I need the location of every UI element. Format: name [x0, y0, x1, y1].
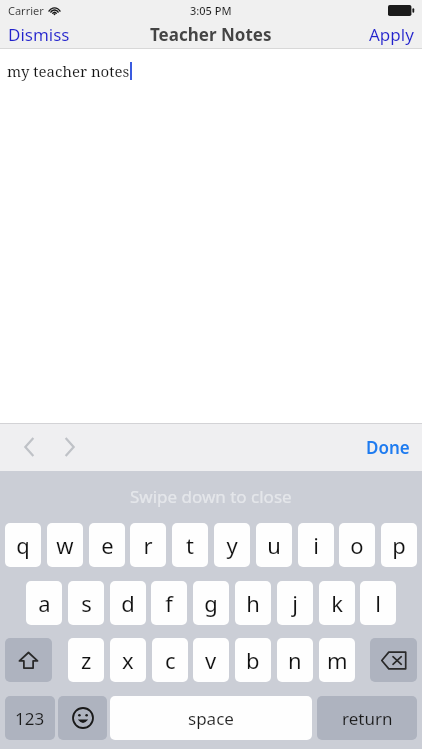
button[interactable]: d [110, 581, 146, 625]
staticText: z [81, 645, 92, 675]
staticText: u [267, 530, 281, 560]
staticText: d [121, 588, 135, 618]
button[interactable]: h [235, 581, 271, 625]
staticText: a [38, 588, 51, 618]
button[interactable]: f [151, 581, 187, 625]
staticText: f [165, 588, 173, 618]
staticText: b [246, 645, 260, 675]
button[interactable]: y [214, 523, 250, 567]
button[interactable]: t [172, 523, 208, 567]
button[interactable]: n [277, 638, 313, 682]
staticText: w [56, 530, 74, 560]
button[interactable]: m [319, 638, 355, 682]
staticText: Teacher Notes [150, 23, 272, 46]
button[interactable]: v [193, 638, 229, 682]
button[interactable]: z [68, 638, 104, 682]
button[interactable]: i [298, 523, 334, 567]
staticText: n [288, 645, 302, 675]
button[interactable]: l [360, 581, 396, 625]
button[interactable]: r [130, 523, 166, 567]
staticText: m [327, 645, 348, 675]
staticText: 3:05 PM [190, 3, 232, 18]
staticText: Done [366, 436, 410, 459]
button[interactable]: p [381, 523, 417, 567]
staticText: Carrier [8, 3, 44, 18]
staticText: g [204, 588, 218, 618]
staticText: space [188, 707, 234, 730]
button[interactable]: k [319, 581, 355, 625]
staticText: h [246, 588, 260, 618]
staticText: r [143, 530, 153, 560]
staticText: e [101, 530, 114, 560]
button[interactable]: Shift [5, 638, 52, 682]
staticText: y [226, 530, 238, 560]
button[interactable]: b [235, 638, 271, 682]
staticText: q [16, 530, 30, 560]
button[interactable]: a [26, 581, 62, 625]
button[interactable]: 123 [5, 696, 55, 740]
button[interactable]: Done [354, 430, 422, 465]
staticText: i [313, 530, 319, 560]
staticText: x [122, 645, 134, 675]
button[interactable]: Next field [54, 430, 84, 464]
button[interactable]: c [152, 638, 188, 682]
staticText: my teacher notes [7, 61, 130, 81]
staticText: k [331, 588, 343, 618]
staticText: return [342, 707, 393, 730]
button[interactable]: Backspace [370, 638, 417, 682]
button[interactable]: e [89, 523, 125, 567]
button[interactable]: j [277, 581, 313, 625]
button[interactable]: Apply [361, 20, 422, 49]
staticText: t [186, 530, 194, 560]
staticText: j [292, 588, 298, 618]
staticText: o [350, 530, 364, 560]
button[interactable]: Emoji [58, 696, 107, 740]
button[interactable]: return [317, 696, 417, 740]
button[interactable]: Previous field [14, 430, 44, 464]
button[interactable]: x [110, 638, 146, 682]
staticText: Swipe down to close [130, 485, 292, 508]
button[interactable]: Dismiss [0, 20, 78, 49]
staticText: l [375, 588, 381, 618]
button[interactable]: space [110, 696, 312, 740]
button[interactable]: g [193, 581, 229, 625]
staticText: v [205, 645, 217, 675]
staticText: 123 [15, 707, 45, 730]
button[interactable]: q [5, 523, 41, 567]
staticText: p [392, 530, 406, 560]
button[interactable]: u [256, 523, 292, 567]
staticText: c [165, 645, 176, 675]
button[interactable]: o [339, 523, 375, 567]
staticText: s [81, 588, 92, 618]
button[interactable]: s [68, 581, 104, 625]
staticText: Dismiss [8, 23, 70, 46]
staticText: Apply [369, 23, 414, 46]
button[interactable]: w [47, 523, 83, 567]
